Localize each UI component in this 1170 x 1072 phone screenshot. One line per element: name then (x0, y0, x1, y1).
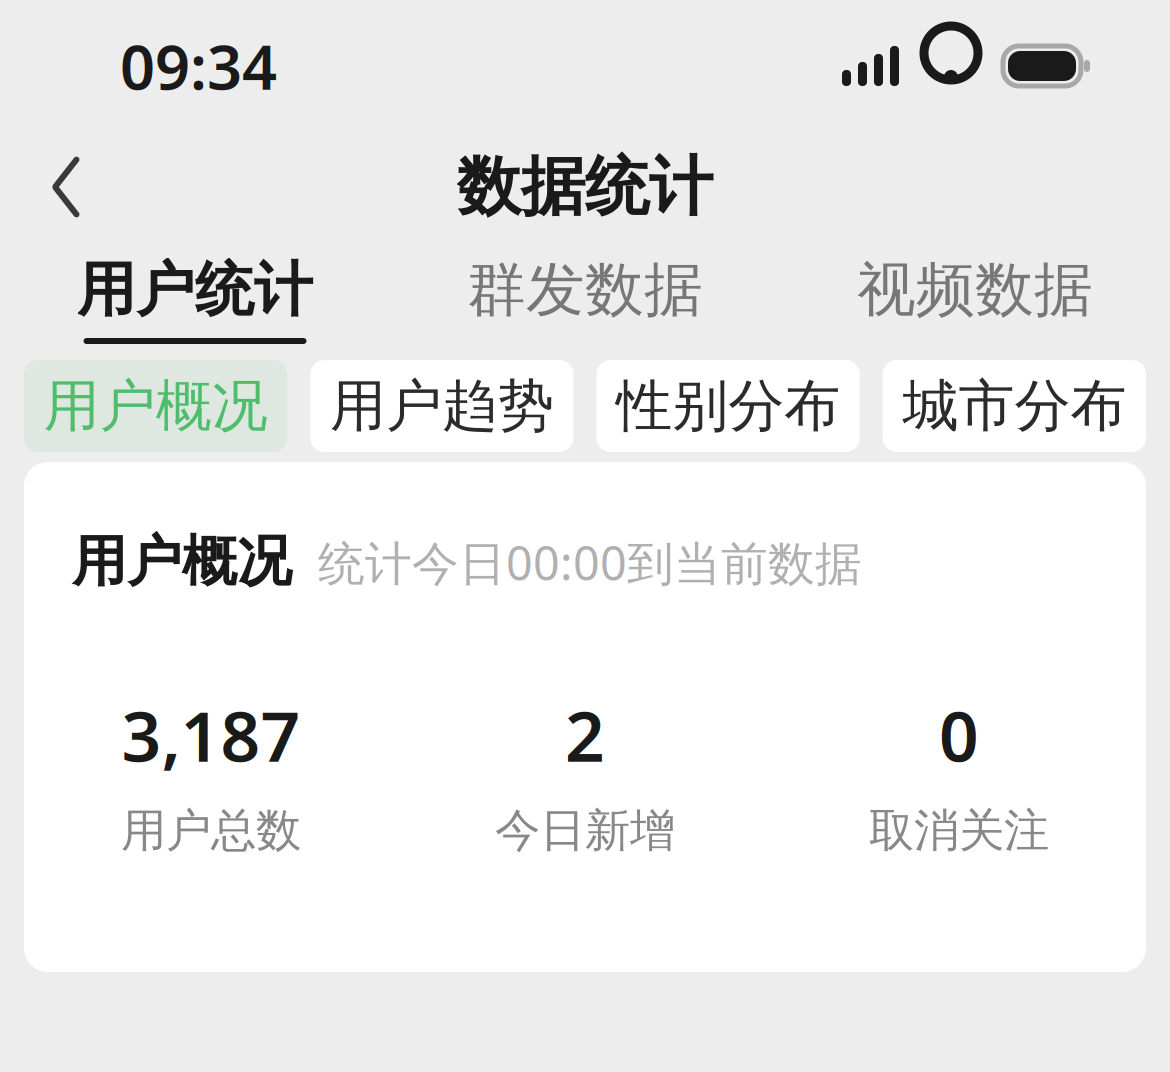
staticText: 视频数据 (857, 254, 1093, 326)
staticText: 3,187 (121, 689, 300, 781)
staticText: 数据统计 (457, 148, 713, 226)
staticText: 2 (565, 689, 605, 781)
staticText: 用户总数 (121, 803, 301, 858)
staticText: 群发数据 (467, 254, 703, 326)
staticText: 用户概况 (72, 528, 292, 595)
staticText: 0 (939, 689, 979, 781)
button[interactable]: 用户趋势 (310, 360, 573, 452)
button[interactable]: 视频数据 (780, 242, 1170, 350)
button[interactable]: 用户概况 (24, 360, 287, 452)
staticText: 09:34 (120, 25, 277, 107)
button[interactable]: 用户统计 (0, 242, 390, 350)
button[interactable]: 群发数据 (390, 242, 780, 350)
staticText: 用户统计 (77, 254, 313, 326)
staticText: 取消关注 (869, 803, 1049, 858)
staticText: 统计今日00:00到当前数据 (318, 531, 862, 593)
staticText: 今日新增 (495, 803, 675, 858)
staticText: 城市分布 (902, 372, 1126, 440)
staticText: 用户概况 (44, 372, 268, 440)
staticText: 用户趋势 (330, 372, 554, 440)
staticText: 性别分布 (616, 372, 840, 440)
button[interactable]: 性别分布 (596, 360, 860, 452)
button[interactable]: 城市分布 (883, 360, 1146, 452)
button[interactable]: 返回 (20, 141, 112, 233)
